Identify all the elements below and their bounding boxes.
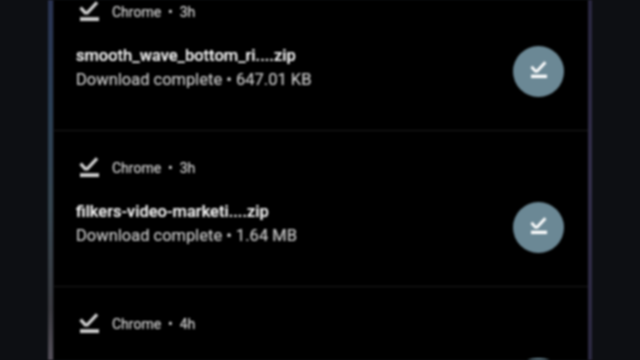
staticText: Download complete • 1.64 MB <box>76 226 297 245</box>
button[interactable]: Open download <box>513 46 564 97</box>
staticText: Chrome • 3h <box>112 4 196 20</box>
button[interactable]: Chrome • 4h <box>54 287 588 335</box>
staticText: filkers-video-marketi....zip <box>76 202 269 221</box>
staticText: Download complete • 647.01 KB <box>76 70 312 89</box>
staticText: Chrome • 3h <box>112 160 196 176</box>
staticText: Chrome • 4h <box>112 316 196 332</box>
staticText: smooth_wave_bottom_ri....zip <box>76 46 296 65</box>
button[interactable]: Chrome • 3h <box>54 0 588 130</box>
button[interactable]: Open download <box>513 358 564 360</box>
button[interactable]: Chrome • 3h <box>54 131 588 286</box>
button[interactable]: Open download <box>513 202 564 253</box>
